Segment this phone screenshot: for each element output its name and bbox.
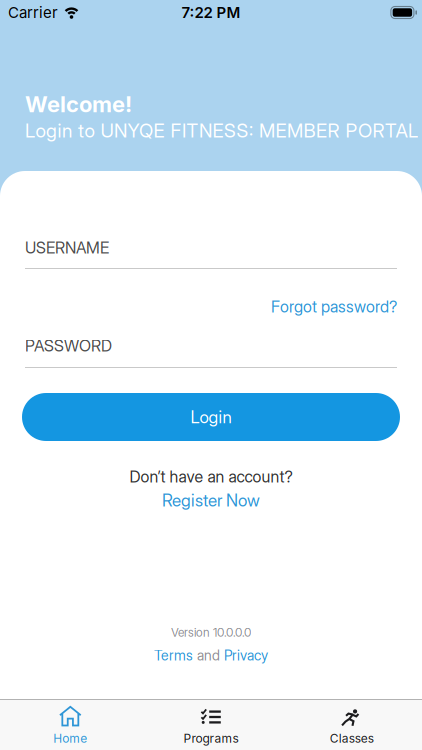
staticText: USERNAME [25, 238, 109, 257]
staticText: and [197, 647, 220, 664]
staticText: Home [53, 731, 87, 745]
staticText: Privacy [224, 647, 268, 664]
staticText: Version 10.0.0.0 [171, 625, 251, 639]
button[interactable]: Forgot password? [271, 297, 397, 316]
staticText: Classes [330, 731, 374, 745]
staticText: Login to UNYQE FITNESS: MEMBER PORTAL [25, 119, 418, 142]
button[interactable]: Login [22, 393, 400, 441]
staticText: 7:22 PM [181, 3, 240, 21]
staticText: Welcome! [25, 91, 132, 118]
staticText: PASSWORD [25, 336, 112, 355]
button[interactable]: Terms [154, 647, 193, 664]
staticText: Login [190, 407, 231, 427]
staticText: Programs [183, 731, 238, 745]
staticText: Register Now [162, 490, 260, 511]
button[interactable]: Home [0, 705, 141, 745]
button[interactable]: Register Now [162, 490, 260, 511]
button[interactable]: Classes [281, 705, 422, 745]
button[interactable]: Privacy [224, 647, 268, 664]
button[interactable]: Programs [141, 705, 281, 745]
staticText: Terms [154, 647, 193, 664]
staticText: Don’t have an account? [129, 467, 292, 486]
staticText: Forgot password? [271, 297, 397, 316]
staticText: Carrier [8, 3, 58, 21]
